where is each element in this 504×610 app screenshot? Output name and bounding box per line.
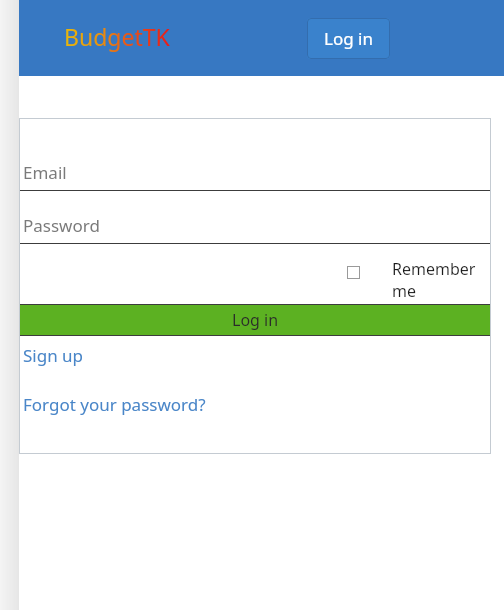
button[interactable]: Sign up (19, 340, 491, 369)
staticText: Email (23, 161, 67, 184)
button[interactable]: Email (19, 118, 491, 190)
staticText: Forgot your password? (23, 393, 206, 416)
other: Remember me (347, 266, 360, 279)
button[interactable]: Password (19, 191, 491, 243)
button[interactable]: Remember me (19, 244, 491, 304)
staticText: Remember me (392, 258, 478, 302)
button[interactable]: BudgetTK (64, 21, 170, 52)
button[interactable]: Log in (307, 18, 390, 59)
staticText: Password (23, 214, 100, 237)
staticText: Log in (324, 27, 373, 50)
staticText: Log in (232, 309, 279, 331)
button[interactable]: Forgot your password? (19, 393, 491, 418)
staticText: Sign up (23, 344, 84, 367)
staticText: BudgetTK (64, 21, 170, 52)
button[interactable]: Log in (19, 305, 491, 335)
